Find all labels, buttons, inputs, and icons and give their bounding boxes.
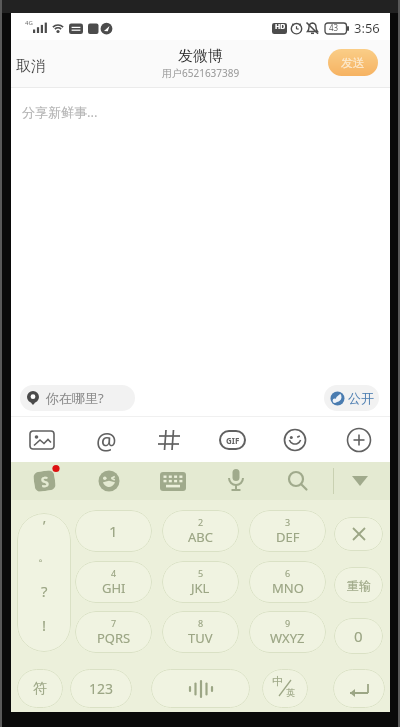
- button[interactable]: 7: [75, 611, 152, 653]
- staticText: 中: [272, 674, 283, 688]
- staticText: 发送: [341, 55, 365, 70]
- staticText: DEF: [276, 528, 300, 546]
- staticText: 2: [198, 516, 204, 528]
- button[interactable]: 符: [17, 669, 63, 708]
- button[interactable]: [345, 466, 375, 496]
- staticText: HD: [275, 22, 286, 32]
- staticText: 取消: [16, 57, 46, 76]
- button[interactable]: 5: [162, 561, 239, 603]
- staticText: 7: [111, 617, 117, 629]
- staticText: 。: [38, 549, 50, 564]
- staticText: 符: [33, 680, 47, 698]
- button[interactable]: 1: [75, 510, 152, 552]
- staticText: @: [96, 425, 117, 456]
- staticText: GIF: [226, 435, 240, 446]
- staticText: ?: [41, 581, 48, 601]
- button[interactable]: 9: [249, 611, 326, 653]
- staticText: MNO: [272, 579, 304, 597]
- button[interactable]: 取消: [16, 53, 66, 79]
- button[interactable]: [221, 466, 251, 496]
- button[interactable]: [93, 466, 125, 496]
- staticText: 0: [354, 626, 363, 646]
- staticText: GHI: [102, 579, 126, 597]
- button[interactable]: 中: [262, 669, 308, 708]
- staticText: 123: [89, 679, 114, 698]
- button[interactable]: 4: [75, 561, 152, 603]
- staticText: 分享新鲜事...: [22, 103, 98, 121]
- button[interactable]: 公开: [324, 385, 379, 411]
- button[interactable]: [157, 466, 189, 496]
- staticText: 3: [285, 516, 291, 528]
- staticText: ABC: [188, 528, 213, 546]
- staticText: 发微博: [178, 47, 223, 66]
- staticText: 重输: [347, 578, 371, 593]
- staticText: 6: [285, 567, 291, 579]
- button[interactable]: [341, 422, 377, 458]
- staticText: JKL: [191, 579, 210, 597]
- staticText: 公开: [348, 390, 374, 406]
- button[interactable]: 6: [249, 561, 326, 603]
- staticText: 4: [111, 567, 117, 579]
- staticText: 9: [285, 617, 291, 629]
- staticText: 5: [198, 567, 204, 579]
- staticText: 用户6521637389: [162, 66, 240, 80]
- button[interactable]: @: [88, 422, 124, 458]
- button[interactable]: [333, 669, 385, 708]
- staticText: TUV: [188, 629, 213, 647]
- staticText: 1: [109, 521, 118, 541]
- button[interactable]: [334, 517, 383, 551]
- button[interactable]: [283, 466, 313, 496]
- staticText: 8: [198, 617, 204, 629]
- button[interactable]: [151, 669, 250, 708]
- button[interactable]: 3: [249, 510, 326, 552]
- staticText: 你在哪里?: [46, 389, 104, 407]
- staticText: ’: [43, 516, 46, 535]
- button[interactable]: 你在哪里?: [20, 385, 135, 411]
- staticText: 3:56: [354, 19, 380, 37]
- button[interactable]: 发送: [328, 49, 378, 76]
- button[interactable]: 8: [162, 611, 239, 653]
- button[interactable]: [24, 422, 60, 458]
- button[interactable]: 2: [162, 510, 239, 552]
- staticText: 43: [329, 22, 339, 33]
- staticText: PQRS: [97, 629, 131, 647]
- button[interactable]: GIF: [214, 422, 250, 458]
- staticText: S: [40, 471, 50, 491]
- button[interactable]: S: [33, 470, 56, 492]
- button[interactable]: 重输: [334, 567, 383, 603]
- staticText: WXYZ: [270, 629, 305, 647]
- button[interactable]: [277, 422, 313, 458]
- button[interactable]: [151, 422, 187, 458]
- staticText: 4G: [25, 19, 33, 27]
- button[interactable]: 0: [334, 618, 383, 654]
- staticText: 英: [286, 687, 295, 698]
- button[interactable]: ’: [17, 513, 71, 652]
- button[interactable]: 123: [70, 669, 132, 708]
- staticText: !: [42, 615, 47, 635]
